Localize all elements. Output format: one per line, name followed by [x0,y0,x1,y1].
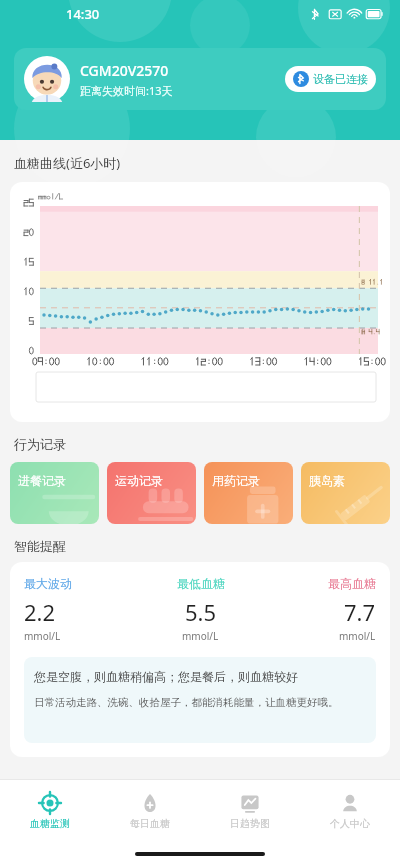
staticText: 行为记录 [14,436,66,452]
button[interactable]: 日趋势图 [200,786,300,836]
staticText: 用药记录 [212,473,260,488]
staticText: 血糖监测 [30,817,70,830]
staticText: mmol/L [182,629,219,643]
staticText: 每日血糖 [130,817,170,830]
button[interactable]: 设备已连接 [285,66,376,92]
staticText: 设备已连接 [313,72,368,86]
staticText: 运动记录 [115,473,163,488]
staticText: 个人中心 [330,817,370,830]
button[interactable]: 胰岛素 [301,462,390,524]
button[interactable]: 血糖监测 [0,786,100,836]
staticText: 14:30 [66,5,100,23]
staticText: mmol/L [339,629,376,643]
staticText: 智能提醒 [14,538,66,554]
button[interactable]: 最大波动 [10,562,390,757]
staticText: CGM20V2570 [80,61,169,80]
staticText: 进餐记录 [18,473,66,488]
button[interactable] [10,182,390,422]
staticText: 7.7 [344,597,376,627]
button[interactable]: 个人中心 [300,786,400,836]
button[interactable]: 运动记录 [107,462,196,524]
staticText: 最高血糖 [328,576,376,591]
button[interactable]: 每日血糖 [100,786,200,836]
staticText: 胰岛素 [309,473,345,488]
button[interactable]: CGM20V2570 [14,48,386,110]
staticText: mmol/L [24,629,61,643]
button[interactable]: 用药记录 [204,462,293,524]
staticText: 血糖曲线(近6小时) [14,154,121,172]
staticText: 最低血糖 [177,576,225,591]
staticText: 日常活动走路、洗碗、收拾屋子，都能消耗能量，让血糖更好哦。 [34,696,339,709]
staticText: 您是空腹，则血糖稍偏高；您是餐后，则血糖较好 [34,669,298,684]
staticText: 2.2 [24,597,56,627]
staticText: 日趋势图 [230,817,270,830]
button[interactable]: 进餐记录 [10,462,99,524]
staticText: 距离失效时间:13天 [80,83,173,98]
staticText: 5.5 [185,597,217,627]
staticText: 最大波动 [24,576,72,591]
